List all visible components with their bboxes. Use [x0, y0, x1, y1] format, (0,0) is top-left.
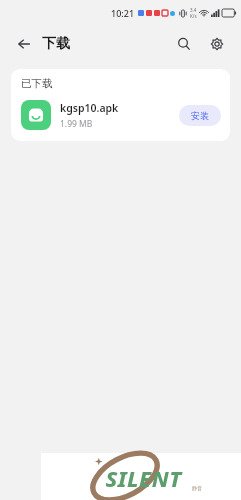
staticText: 1.99 MB: [60, 118, 93, 130]
button[interactable]: 安装: [179, 105, 221, 126]
staticText: 静音: [192, 485, 202, 491]
staticText: kgsp10.apk: [60, 101, 119, 115]
button[interactable]: Search: [170, 30, 198, 58]
staticText: 安装: [191, 110, 209, 121]
staticText: SILENT: [105, 463, 182, 493]
staticText: 已下载: [21, 77, 53, 90]
staticText: 下载: [42, 35, 70, 53]
button[interactable]: Back: [10, 30, 38, 58]
staticText: K/s: [190, 13, 197, 19]
button[interactable]: kgsp10.apk: [11, 99, 230, 141]
staticText: 10:21: [111, 7, 135, 19]
button[interactable]: Settings: [203, 30, 231, 58]
staticText: 3.4: [190, 7, 197, 13]
